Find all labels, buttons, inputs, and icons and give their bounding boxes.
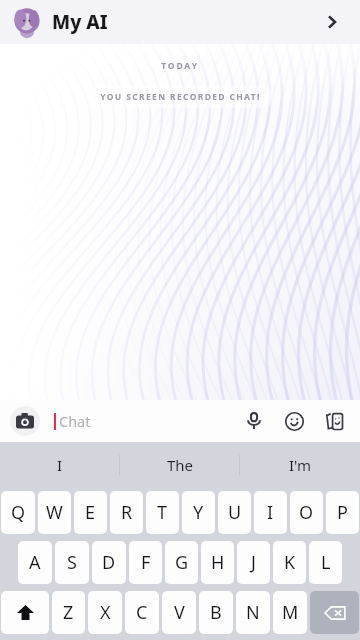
button[interactable]: T [146, 491, 179, 534]
button[interactable]: L [309, 541, 342, 584]
button[interactable]: U [218, 491, 251, 534]
button[interactable]: M [273, 591, 307, 634]
staticText: X [100, 600, 111, 625]
staticText: E [85, 500, 96, 525]
button[interactable]: F [129, 541, 162, 584]
button[interactable]: X [88, 591, 122, 634]
button[interactable]: Z [52, 591, 85, 634]
staticText: L [321, 550, 331, 575]
staticText: Q [11, 500, 26, 525]
staticText: O [299, 500, 314, 525]
button[interactable]: Stickers [318, 405, 350, 437]
staticText: Chat [59, 411, 91, 431]
staticText: Y [193, 500, 204, 525]
staticText: S [67, 550, 77, 575]
button[interactable]: D [92, 541, 126, 584]
button[interactable]: P [326, 491, 359, 534]
button[interactable]: N [236, 591, 270, 634]
staticText: C [136, 600, 148, 625]
staticText: R [121, 500, 133, 525]
staticText: G [175, 550, 189, 575]
button[interactable]: Backspace [310, 591, 359, 634]
staticText: I [57, 455, 63, 475]
staticText: H [211, 550, 225, 575]
staticText: B [210, 600, 222, 625]
staticText: P [337, 500, 348, 525]
staticText: M [282, 600, 299, 625]
button[interactable]: Voice message [238, 405, 270, 437]
staticText: I'm [289, 455, 312, 475]
staticText: D [102, 550, 116, 575]
button[interactable]: I [254, 491, 287, 534]
staticText: U [228, 500, 242, 525]
staticText: I [267, 500, 274, 525]
button[interactable]: I [0, 442, 120, 488]
button[interactable]: A [18, 541, 52, 584]
button[interactable]: S [55, 541, 89, 584]
button[interactable]: O [290, 491, 323, 534]
button[interactable]: Shift [1, 591, 49, 634]
button[interactable]: W [38, 491, 71, 534]
button[interactable]: Camera [10, 406, 40, 436]
button[interactable]: R [110, 491, 143, 534]
button[interactable]: E [74, 491, 107, 534]
button[interactable]: I'm [240, 442, 360, 488]
staticText: My AI [52, 9, 108, 35]
button[interactable]: H [201, 541, 234, 584]
button[interactable]: G [165, 541, 198, 584]
button[interactable]: V [162, 591, 196, 634]
staticText: F [141, 550, 151, 575]
staticText: YOU SCREEN RECORDED CHAT! [100, 91, 261, 103]
button[interactable]: The [120, 442, 240, 488]
staticText: K [284, 550, 296, 575]
staticText: W [46, 500, 63, 525]
staticText: V [174, 600, 185, 625]
staticText: The [167, 455, 194, 475]
staticText: Z [63, 600, 74, 625]
button[interactable]: My AI [0, 0, 360, 44]
button[interactable]: Emoji [278, 405, 310, 437]
button[interactable]: K [273, 541, 306, 584]
button[interactable]: Y [182, 491, 215, 534]
button[interactable]: J [237, 541, 270, 584]
button[interactable]: Q [1, 491, 35, 534]
button[interactable]: B [199, 591, 233, 634]
button[interactable]: Open profile [314, 5, 348, 39]
staticText: A [29, 550, 41, 575]
button[interactable]: C [125, 591, 159, 634]
staticText: N [246, 600, 260, 625]
staticText: T [157, 500, 168, 525]
staticText: TODAY [161, 60, 199, 72]
staticText: J [251, 550, 256, 575]
